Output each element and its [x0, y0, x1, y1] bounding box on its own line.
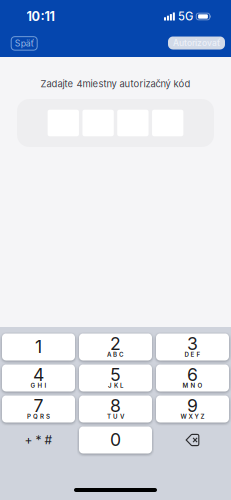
staticText: A B C	[107, 351, 124, 358]
button[interactable]: 6	[156, 364, 229, 391]
staticText: D E F	[184, 351, 200, 358]
button[interactable]: 0	[79, 426, 152, 453]
staticText: Späť	[15, 38, 34, 49]
staticText: T U V	[107, 413, 124, 420]
button[interactable]: Späť	[11, 37, 37, 50]
staticText: W X Y Z	[180, 413, 204, 420]
staticText: Zadajte 4miestny autorizačný kód	[40, 78, 190, 89]
staticText: M N O	[182, 382, 202, 389]
staticText: 10:11	[26, 9, 54, 24]
staticText: 8	[110, 395, 121, 416]
button[interactable]: 4	[2, 364, 75, 391]
staticText: 6	[187, 364, 198, 385]
button[interactable]: 2	[79, 333, 152, 360]
staticText: 5	[110, 364, 121, 385]
staticText: Autorizovať	[173, 38, 220, 48]
staticText: G H I	[30, 382, 46, 389]
staticText: 2	[110, 333, 121, 354]
staticText: 9	[187, 395, 198, 416]
button[interactable]: 9	[156, 395, 229, 422]
staticText: 0	[110, 429, 121, 450]
staticText: 5G	[178, 10, 193, 23]
staticText: + * #	[24, 433, 52, 447]
button[interactable]: 8	[79, 395, 152, 422]
button[interactable]: Delete	[156, 426, 229, 453]
staticText: 7	[33, 395, 43, 416]
staticText: 1	[35, 336, 42, 357]
button[interactable]: 5	[79, 364, 152, 391]
button[interactable]: Autorizovať	[168, 36, 225, 49]
staticText: P Q R S	[27, 413, 50, 420]
button[interactable]: 1	[2, 333, 75, 360]
button[interactable]: 7	[2, 395, 75, 422]
button[interactable]: + * #	[2, 426, 75, 453]
staticText: J K L	[108, 382, 123, 389]
staticText: 3	[187, 333, 198, 354]
staticText: 4	[33, 364, 44, 385]
button[interactable]: 3	[156, 333, 229, 360]
